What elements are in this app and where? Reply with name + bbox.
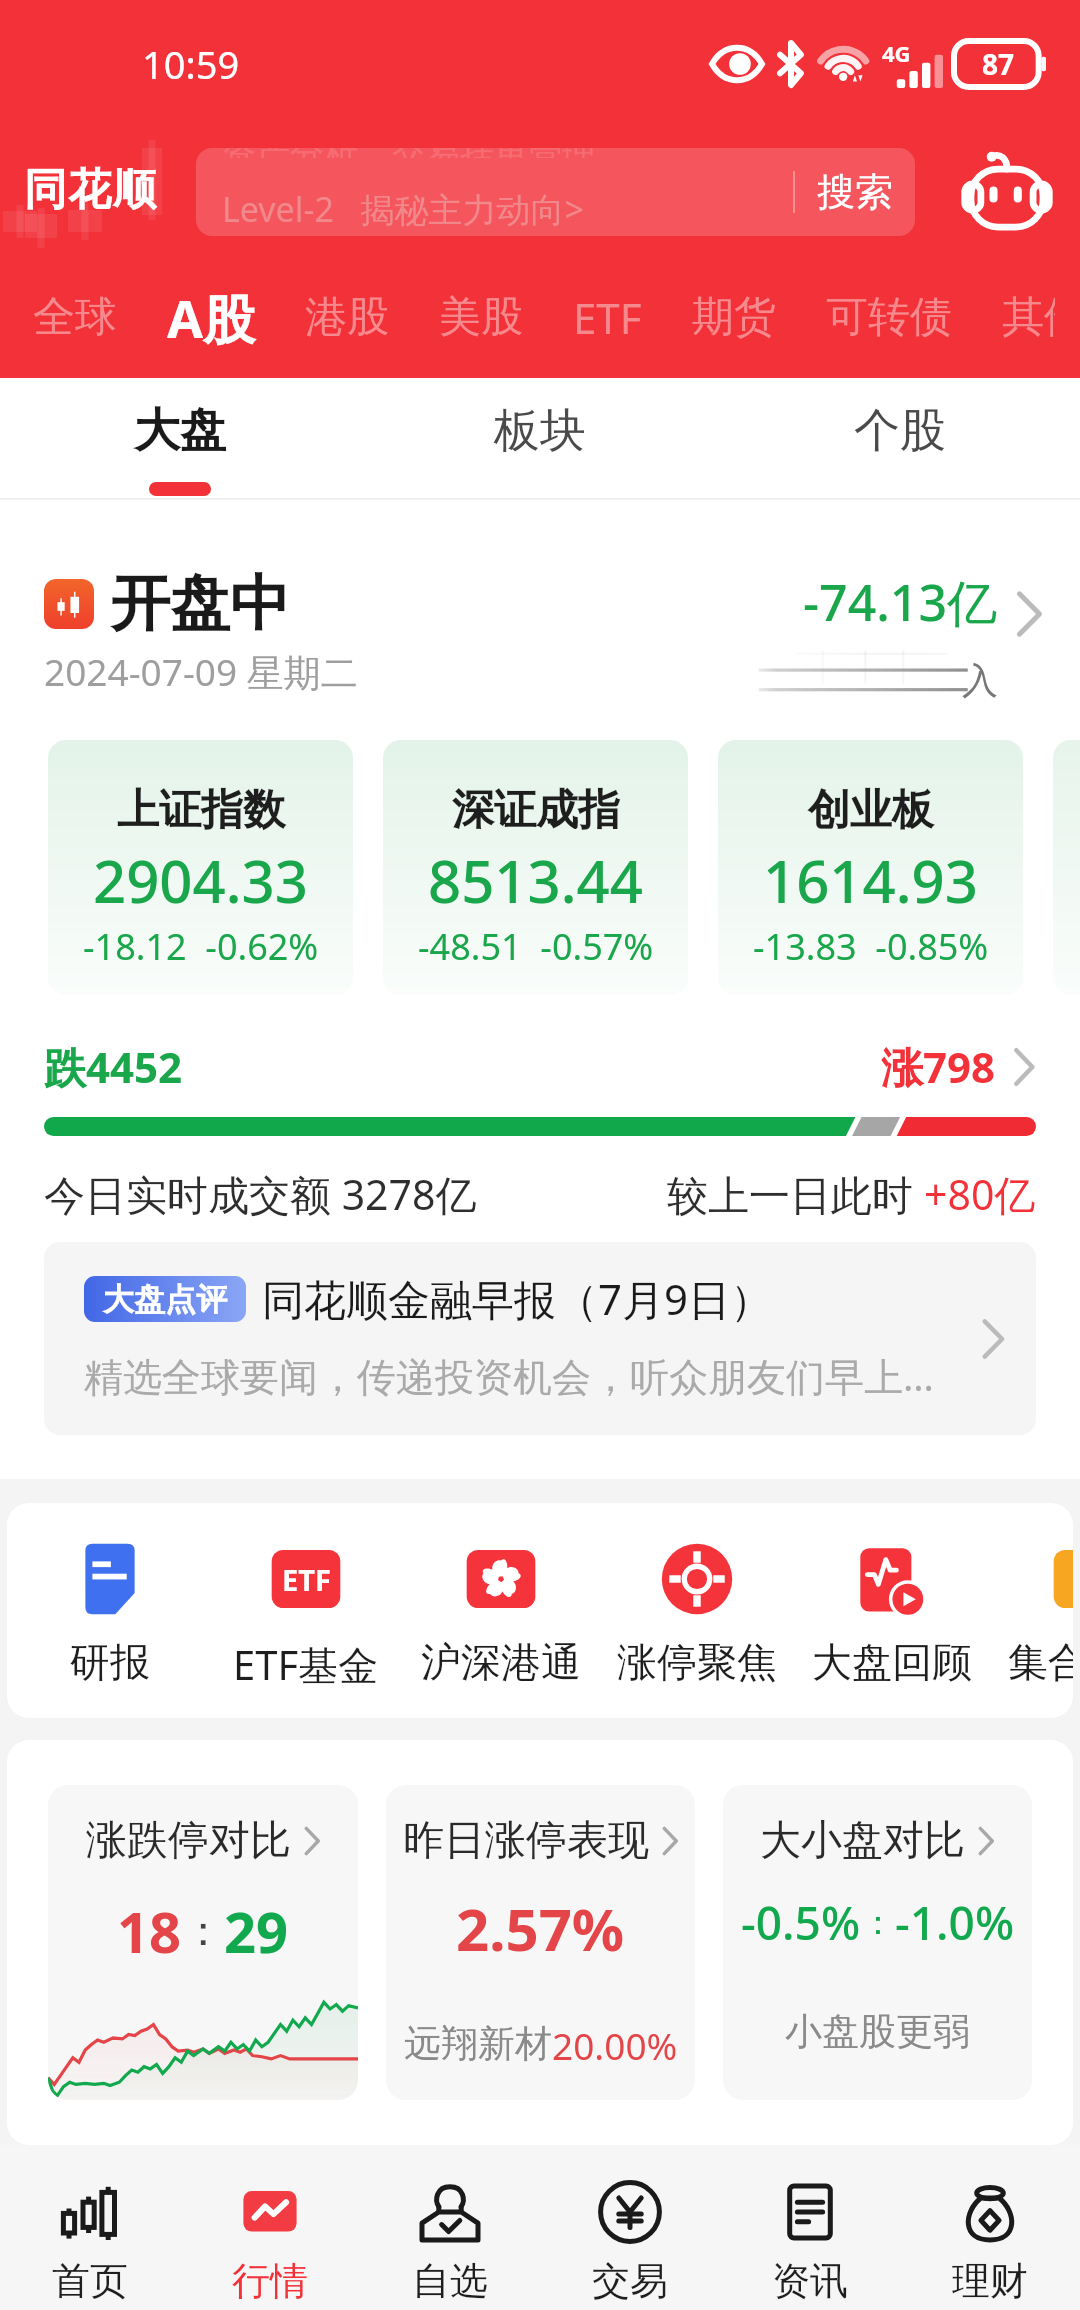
staticText: 个股 bbox=[854, 402, 946, 460]
staticText: ETF bbox=[573, 289, 642, 346]
staticText: 大盘点评 bbox=[103, 1280, 227, 1319]
button[interactable]: 涨跌停对比 bbox=[48, 1785, 358, 2100]
button[interactable]: 美股 bbox=[414, 291, 548, 344]
staticText: 昨日涨停表现 bbox=[403, 1815, 649, 1867]
button[interactable]: ETF bbox=[548, 289, 667, 346]
staticText: 研报 bbox=[70, 1637, 150, 1687]
staticText: 较上一日此时 bbox=[667, 1166, 924, 1222]
staticText: 大盘 bbox=[134, 402, 226, 460]
staticText: -13.83 -0.85% bbox=[753, 922, 989, 971]
staticText: 2904.33 bbox=[93, 841, 308, 920]
button[interactable]: 资讯 bbox=[720, 2145, 900, 2310]
staticText: 创业板 bbox=[808, 784, 934, 837]
staticText: 精选全球要闻，传递投资机会，听众朋友们早上… bbox=[84, 1349, 934, 1402]
button[interactable]: 跌4452 bbox=[44, 1038, 1036, 1095]
staticText: 板块 bbox=[494, 402, 586, 460]
staticText: 集合竞价 bbox=[1008, 1637, 1073, 1687]
button[interactable]: ETF bbox=[211, 1503, 401, 1718]
button[interactable]: AI assistant bbox=[960, 145, 1054, 237]
staticText: 2024-07-09 星期二 bbox=[44, 646, 358, 697]
staticText: 其他 bbox=[1002, 291, 1055, 344]
staticText: ETF基金 bbox=[233, 1637, 379, 1692]
staticText: 10:59 bbox=[142, 38, 240, 90]
button[interactable]: 理财 bbox=[900, 2145, 1080, 2310]
staticText: 自选 bbox=[412, 2257, 488, 2305]
staticText: 全球 bbox=[33, 291, 117, 344]
staticText: 搜索 bbox=[817, 168, 893, 216]
staticText: 8513.44 bbox=[428, 841, 643, 920]
button[interactable]: 搜索 bbox=[795, 148, 915, 236]
staticText: 涨停聚焦 bbox=[617, 1637, 777, 1687]
staticText: 29 bbox=[224, 1893, 289, 1969]
staticText: 跌4452 bbox=[44, 1038, 183, 1095]
staticText: 大盘回顾 bbox=[812, 1637, 972, 1687]
staticText: 20.00% bbox=[552, 2020, 678, 2070]
staticText: ： bbox=[182, 1905, 224, 1958]
button[interactable]: 大小盘对比 bbox=[723, 1785, 1032, 2100]
staticText: 入 bbox=[962, 658, 998, 703]
staticText: 理财 bbox=[952, 2257, 1028, 2305]
staticText: 同花顺金融早报（7月9日） bbox=[262, 1270, 773, 1327]
button[interactable]: 交易 bbox=[540, 2145, 720, 2310]
staticText: 4G bbox=[882, 38, 911, 68]
button[interactable]: 其他 bbox=[977, 291, 1080, 344]
staticText: 美股 bbox=[439, 291, 523, 344]
button[interactable]: 上证指数 bbox=[48, 740, 353, 995]
staticText: 18 bbox=[117, 1893, 182, 1969]
staticText: A股 bbox=[167, 282, 255, 353]
button[interactable]: 大盘点评 bbox=[44, 1242, 1036, 1435]
staticText: 上证指数 bbox=[117, 784, 285, 837]
staticText: 交易 bbox=[592, 2257, 668, 2305]
staticText: 首页 bbox=[52, 2257, 128, 2305]
staticText: 87 bbox=[982, 45, 1015, 83]
staticText: Level-2 揭秘主力动向> bbox=[222, 186, 584, 232]
staticText: 大小盘对比 bbox=[760, 1815, 965, 1867]
button[interactable]: 大盘 bbox=[0, 378, 360, 500]
staticText: 涨798 bbox=[881, 1038, 996, 1095]
button[interactable]: 港股 bbox=[280, 291, 414, 344]
button[interactable]: 全球 bbox=[8, 291, 142, 344]
staticText: -1.0% bbox=[895, 1891, 1015, 1954]
staticText: 深证成指 bbox=[452, 784, 620, 837]
staticText: ETF bbox=[282, 1560, 331, 1599]
staticText: 远翔新材 bbox=[404, 2020, 552, 2067]
staticText: 涨跌停对比 bbox=[86, 1815, 291, 1867]
button[interactable]: 大盘回顾 bbox=[797, 1503, 987, 1718]
button[interactable]: 竞 bbox=[993, 1503, 1073, 1718]
staticText: 港股 bbox=[305, 291, 389, 344]
staticText: 小盘股更弱 bbox=[785, 2008, 970, 2055]
button[interactable]: 首页 bbox=[0, 2145, 180, 2310]
button[interactable]: 开盘中 bbox=[44, 566, 1044, 726]
staticText: +80亿 bbox=[924, 1166, 1036, 1222]
button[interactable]: 个股 bbox=[720, 378, 1080, 500]
staticText: 今日实时成交额 3278亿 bbox=[44, 1166, 477, 1222]
button[interactable]: 昨日涨停表现 bbox=[386, 1785, 695, 2100]
staticText: -48.51 -0.57% bbox=[418, 922, 654, 971]
staticText: -18.12 -0.62% bbox=[83, 922, 319, 971]
button[interactable]: 研报 bbox=[15, 1503, 205, 1718]
staticText: ： bbox=[861, 1901, 895, 1944]
button[interactable]: 深证成指 bbox=[383, 740, 688, 995]
button[interactable]: 涨停聚焦 bbox=[602, 1503, 792, 1718]
staticText: 资讯 bbox=[772, 2257, 848, 2305]
button[interactable]: 行情 bbox=[180, 2145, 360, 2310]
button[interactable]: 创业板 bbox=[718, 740, 1023, 995]
button[interactable]: A股 bbox=[142, 282, 280, 353]
staticText: 1614.93 bbox=[763, 841, 978, 920]
staticText: 开盘中 bbox=[110, 566, 290, 642]
staticText: -74.13亿 bbox=[803, 568, 998, 636]
button[interactable]: 可转债 bbox=[801, 291, 977, 344]
staticText: 期货 bbox=[692, 291, 776, 344]
staticText: 2.57% bbox=[456, 1889, 625, 1968]
button[interactable]: 沪深港通 bbox=[406, 1503, 596, 1718]
button[interactable]: 自选 bbox=[360, 2145, 540, 2310]
button[interactable]: 期货 bbox=[667, 291, 801, 344]
staticText: -0.5% bbox=[741, 1891, 861, 1954]
staticText: 行情 bbox=[232, 2257, 308, 2305]
button[interactable]: 板块 bbox=[360, 378, 720, 500]
staticText: 沪深港通 bbox=[421, 1637, 581, 1687]
staticText: 同花顺 bbox=[24, 163, 158, 213]
staticText: 资产分析，交易挂单管理 bbox=[222, 148, 596, 158]
button[interactable]: 资产分析，交易挂单管理 bbox=[196, 148, 915, 236]
staticText: 可转债 bbox=[826, 291, 952, 344]
